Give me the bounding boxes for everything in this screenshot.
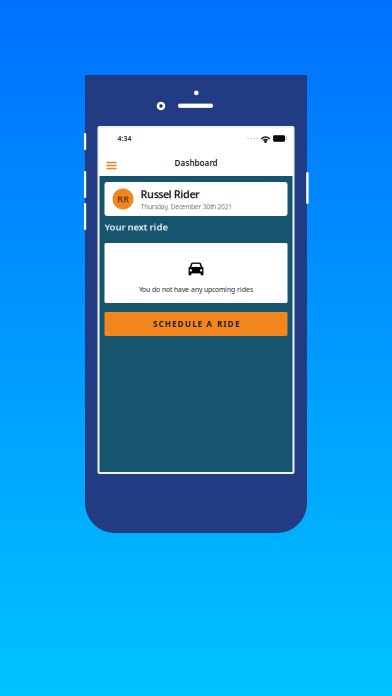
staticText: Thursday, December 30th 2021 — [140, 202, 232, 211]
staticText: Your next ride — [104, 221, 167, 233]
staticText: 4:34 — [117, 134, 131, 143]
staticText: SCHEDULE A RIDE — [153, 319, 239, 329]
button[interactable]: Menu — [102, 153, 121, 172]
button[interactable]: SCHEDULE A RIDE — [104, 312, 287, 336]
staticText: Russel Rider — [140, 187, 200, 201]
button[interactable]: RR — [104, 182, 287, 216]
staticText: You do not have any upcoming rides — [139, 285, 253, 294]
staticText: RR — [117, 193, 129, 205]
staticText: Dashboard — [174, 158, 217, 168]
